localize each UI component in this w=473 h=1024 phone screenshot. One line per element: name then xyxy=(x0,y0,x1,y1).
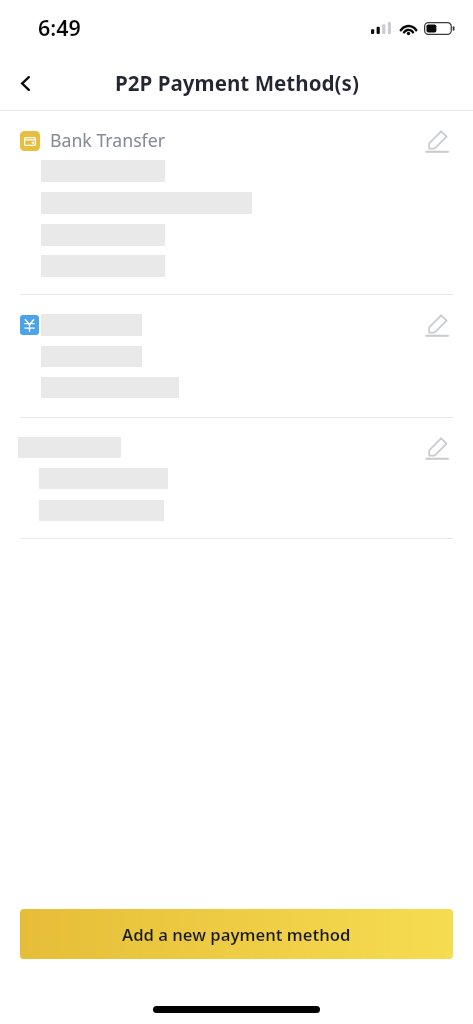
staticText: P2P Payment Method(s) xyxy=(115,69,359,97)
button[interactable]: Edit payment method xyxy=(425,437,447,459)
button[interactable]: Back xyxy=(7,65,43,101)
button[interactable]: Edit payment method xyxy=(425,314,447,336)
button[interactable] xyxy=(0,120,473,290)
button[interactable]: Edit payment method xyxy=(425,130,447,152)
staticText: Bank Transfer xyxy=(50,128,165,152)
staticText: 6:49 xyxy=(38,13,81,42)
button[interactable]: Add a new payment method xyxy=(20,909,453,959)
staticText: Add a new payment method xyxy=(122,923,351,946)
other: Battery xyxy=(424,22,455,35)
other: Cellular signal xyxy=(371,22,393,34)
button[interactable] xyxy=(0,428,473,533)
other: Wi-Fi xyxy=(398,21,419,35)
button[interactable] xyxy=(0,305,473,410)
